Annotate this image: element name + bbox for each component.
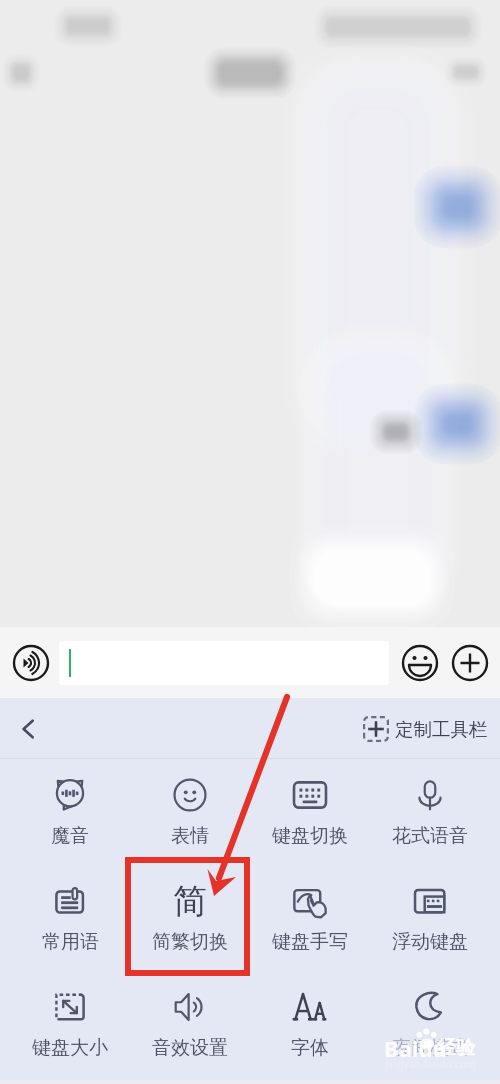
staticText: 键盘切换 (272, 824, 348, 848)
staticText: 表情 (171, 824, 209, 848)
staticText: 经验 (437, 1036, 475, 1060)
staticText: 简繁切换 (152, 930, 228, 954)
button[interactable]: 键盘大小 (10, 974, 130, 1080)
staticText: 键盘大小 (32, 1036, 108, 1060)
button[interactable]: 音效设置 (130, 974, 250, 1080)
staticText: 音效设置 (152, 1036, 228, 1060)
button[interactable] (59, 641, 389, 685)
staticText: 常用语 (42, 930, 99, 954)
button[interactable]: Emoji (401, 644, 439, 682)
button[interactable]: 花式语音 (370, 762, 490, 868)
staticText: 定制工具栏 (395, 718, 488, 741)
button[interactable]: 键盘切换 (250, 762, 370, 868)
staticText: 夜间模式 (392, 1036, 468, 1060)
button[interactable]: Voice input (12, 644, 50, 682)
staticText: 魔音 (51, 824, 89, 848)
button[interactable]: 简 (130, 868, 250, 974)
staticText: 字体 (291, 1036, 329, 1060)
staticText: 简 (173, 880, 207, 923)
button[interactable]: 夜间模式 (370, 974, 490, 1080)
button[interactable]: 常用语 (10, 868, 130, 974)
button[interactable]: 表情 (130, 762, 250, 868)
staticText: 花式语音 (392, 824, 468, 848)
button[interactable]: 定制工具栏 (363, 716, 488, 742)
button[interactable]: Back (6, 707, 50, 751)
button[interactable]: 字体 (250, 974, 370, 1080)
button[interactable]: 魔音 (10, 762, 130, 868)
staticText: 键盘手写 (272, 930, 348, 954)
button[interactable]: 键盘手写 (250, 868, 370, 974)
button[interactable]: 浮动键盘 (370, 868, 490, 974)
staticText: 浮动键盘 (392, 930, 468, 954)
staticText: Baidu (384, 1033, 447, 1063)
button[interactable]: More options (451, 644, 489, 682)
